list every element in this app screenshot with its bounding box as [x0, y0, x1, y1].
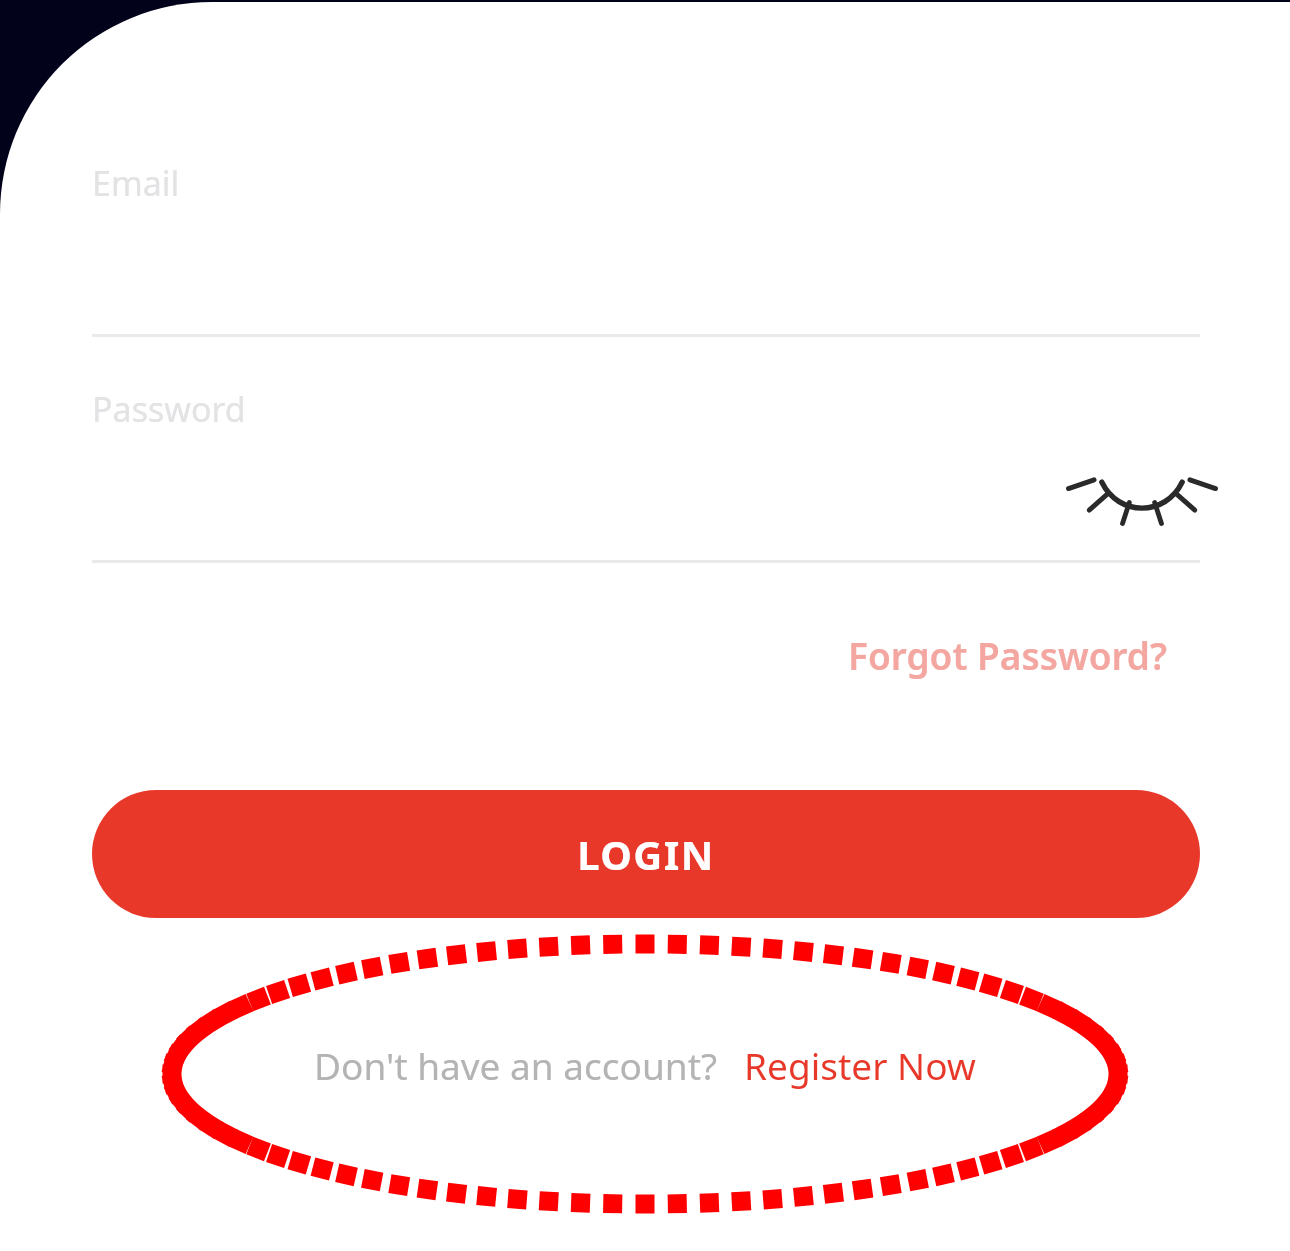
staticText: LOGIN: [577, 827, 715, 881]
staticText: Register Now: [744, 1040, 976, 1090]
button[interactable]: Register Now: [744, 1040, 976, 1090]
staticText: Email: [92, 160, 180, 206]
button[interactable]: Forgot Password?: [834, 620, 1182, 690]
staticText: Password: [92, 386, 246, 432]
staticText: Forgot Password?: [848, 630, 1168, 680]
staticText: Don't have an account?: [314, 1040, 718, 1090]
button[interactable]: Show password: [1086, 448, 1198, 548]
button[interactable]: LOGIN: [92, 790, 1200, 918]
